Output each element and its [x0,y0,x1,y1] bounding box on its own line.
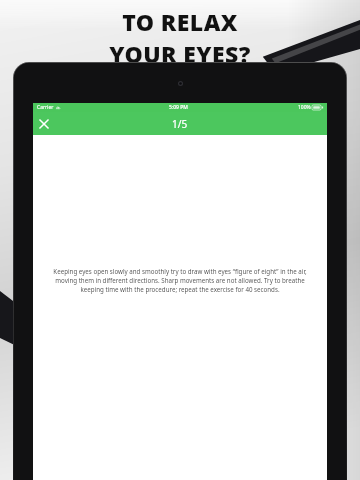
button[interactable]: Close [33,113,55,135]
staticText: Keeping eyes open slowly and smoothly tr… [45,267,315,294]
staticText: TO RELAX [122,6,238,37]
staticText: 5:09 PM [169,104,188,111]
staticText: Carrier [37,104,54,111]
staticText: YOUR EYES? [109,38,251,69]
staticText: 1/5 [172,117,188,131]
staticText: 100% [298,104,311,111]
